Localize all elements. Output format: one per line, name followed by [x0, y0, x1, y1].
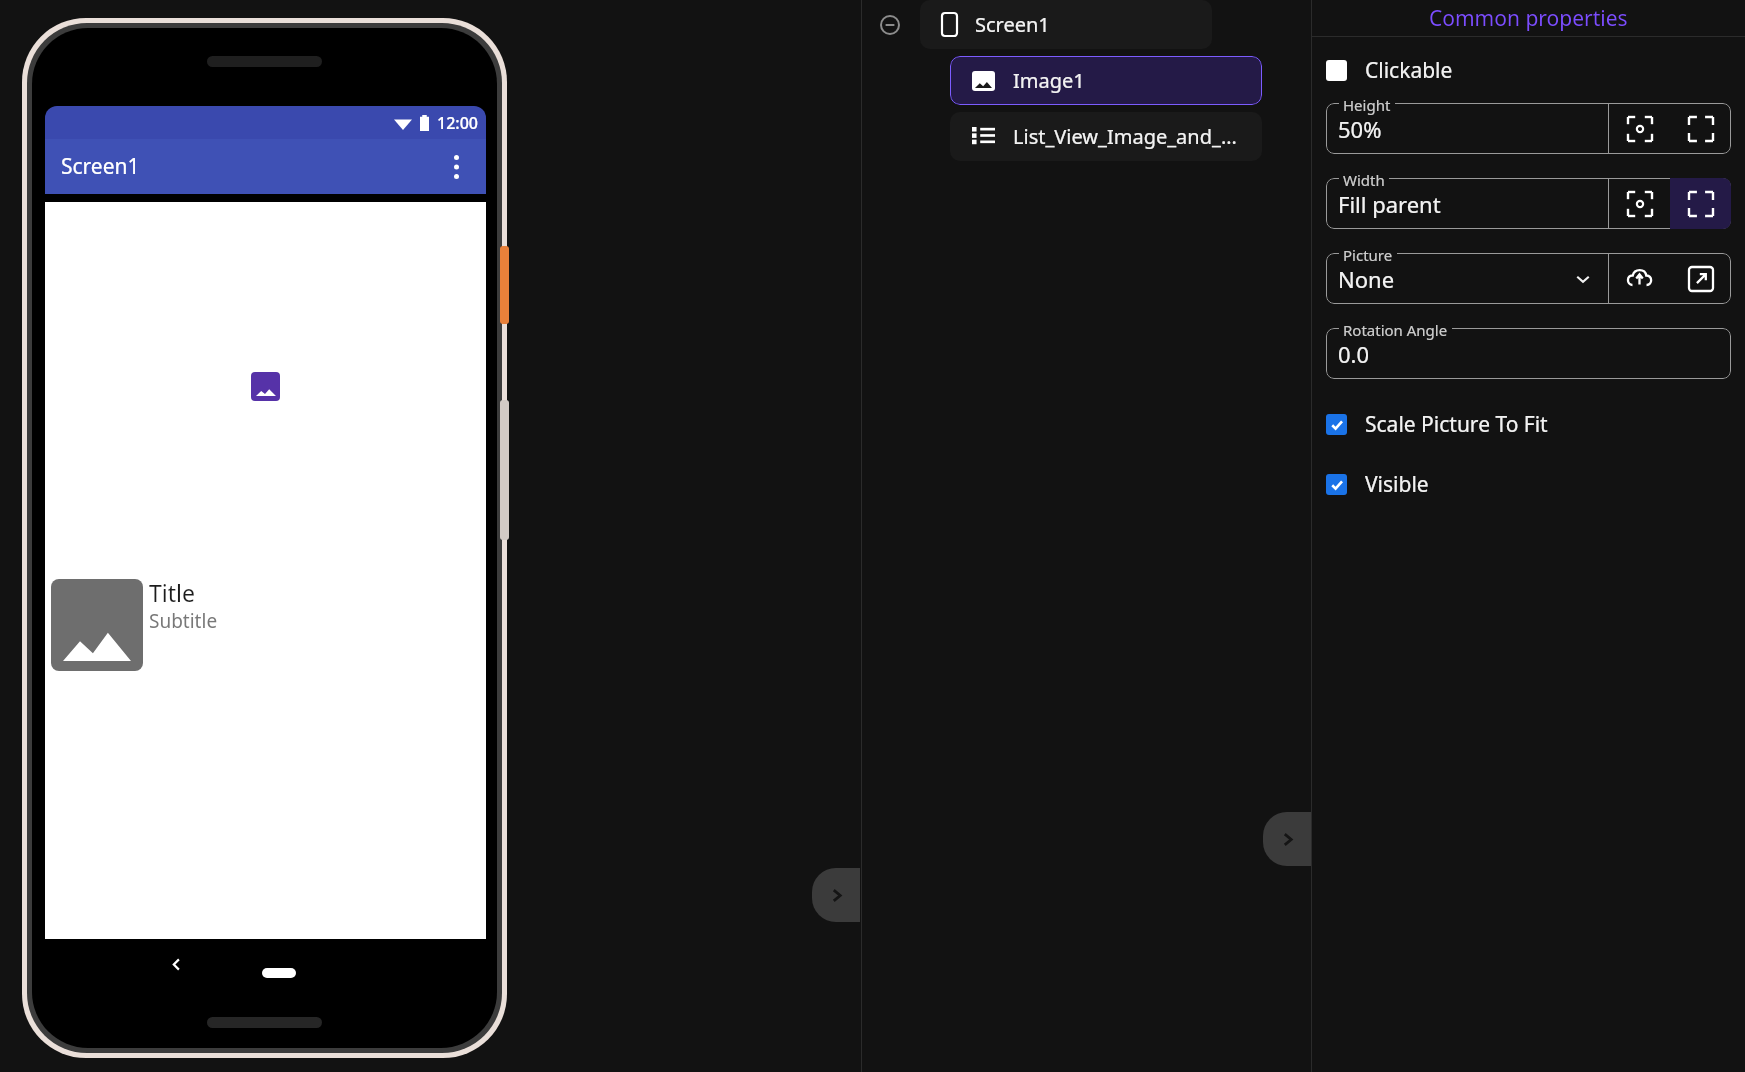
button[interactable]: Collapse tree [874, 9, 906, 41]
staticText: Clickable [1365, 56, 1453, 85]
staticText: Visible [1365, 470, 1429, 499]
button[interactable]: Option B [1670, 178, 1731, 229]
button[interactable]: List_View_Image_and_… [950, 112, 1262, 161]
button[interactable]: Option A [1609, 103, 1670, 154]
button[interactable]: Screen1 [920, 0, 1212, 49]
staticText: 50% [1338, 114, 1382, 144]
staticText: Rotation Angle [1343, 320, 1448, 340]
staticText: Title [149, 577, 195, 608]
staticText: Common properties [1429, 4, 1628, 33]
button[interactable] [1326, 253, 1731, 304]
staticText: Fill parent [1338, 189, 1441, 219]
button[interactable]: Option B [1670, 103, 1731, 154]
button[interactable]: Home [262, 968, 296, 978]
button[interactable]: More options [437, 148, 475, 186]
button[interactable]: Visible [1312, 465, 1745, 503]
button[interactable]: Image1 [950, 56, 1262, 105]
staticText: Picture [1343, 245, 1393, 265]
button[interactable]: Expand properties [1263, 812, 1311, 866]
button[interactable]: Option A [1609, 178, 1670, 229]
staticText: Screen1 [61, 152, 140, 181]
staticText: Subtitle [149, 608, 218, 634]
staticText: Scale Picture To Fit [1365, 410, 1548, 439]
button[interactable]: Back [160, 948, 192, 980]
button[interactable]: Clickable [1312, 51, 1745, 89]
staticText: 0.0 [1338, 339, 1370, 369]
staticText: Width [1343, 170, 1385, 190]
button[interactable]: Option A [1609, 253, 1670, 304]
button[interactable]: Expand palette [812, 868, 860, 922]
staticText: None [1338, 264, 1395, 294]
button[interactable]: Option B [1670, 253, 1731, 304]
staticText: 12:00 [437, 112, 478, 134]
button[interactable]: Scale Picture To Fit [1312, 405, 1745, 443]
staticText: Screen1 [975, 11, 1050, 38]
staticText: Image1 [1013, 67, 1085, 94]
staticText: Height [1343, 95, 1391, 115]
button[interactable] [1326, 178, 1731, 229]
button[interactable]: Title [45, 571, 486, 671]
button[interactable] [1326, 103, 1731, 154]
button[interactable] [1326, 328, 1731, 379]
staticText: List_View_Image_and_… [1013, 123, 1237, 150]
button[interactable]: Image1 placeholder [45, 202, 486, 571]
